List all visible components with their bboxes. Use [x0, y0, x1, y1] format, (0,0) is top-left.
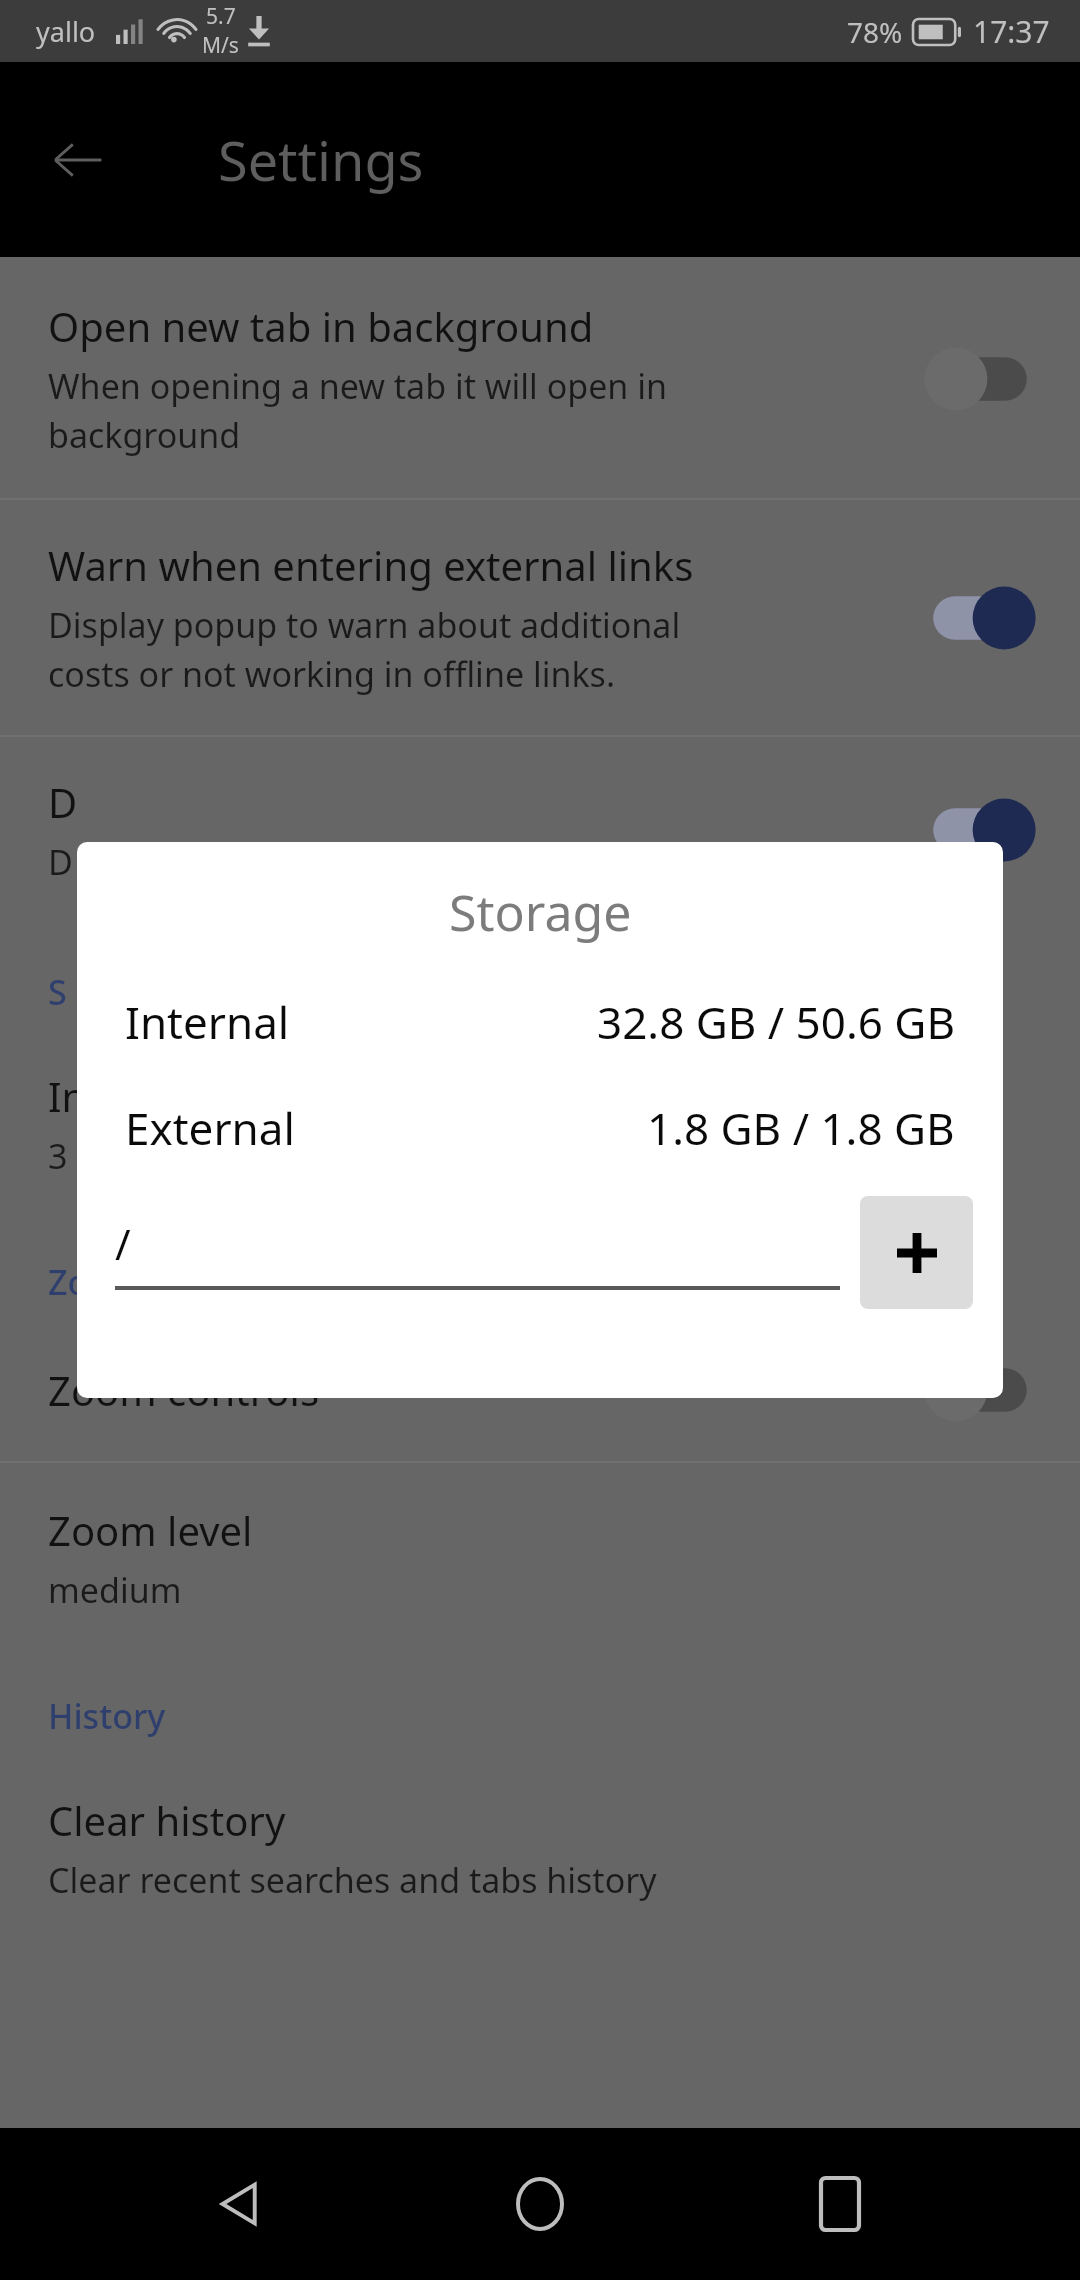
button[interactable]: Toggle off [920, 1355, 1040, 1425]
staticText: In [48, 1069, 87, 1123]
staticText: History [48, 1693, 166, 1739]
staticText: D [48, 839, 73, 885]
button[interactable]: Zoom controls [0, 1319, 1080, 1461]
button[interactable]: In [0, 1029, 1080, 1213]
staticText: Internal [125, 992, 290, 1052]
staticText: 17:37 [973, 11, 1050, 52]
staticText: M/s [202, 31, 239, 60]
staticText: Display popup to warn about additional c… [48, 602, 681, 697]
staticText: 32.8 GB / 50.6 GB [597, 992, 955, 1052]
staticText: 1.8 GB / 1.8 GB [647, 1098, 955, 1158]
staticText: 78% [847, 13, 903, 51]
button[interactable]: Zoom level [0, 1463, 1080, 1647]
staticText: When opening a new tab it will open in b… [48, 363, 668, 458]
button[interactable]: Toggle on [920, 795, 1040, 865]
button[interactable]: Back [30, 112, 126, 208]
staticText: Storage [449, 878, 632, 946]
staticText: External [125, 1098, 295, 1158]
staticText: / [115, 1215, 131, 1272]
button[interactable]: Add folder [860, 1196, 973, 1309]
button[interactable]: Toggle off [920, 344, 1040, 414]
staticText: 3 [48, 1133, 68, 1179]
button[interactable]: Clear history [0, 1753, 1080, 1937]
staticText: yallo [36, 13, 96, 50]
button[interactable]: Warn when entering external links [0, 500, 1080, 735]
staticText: Zoom level [48, 1503, 253, 1557]
staticText: Warn when entering external links [48, 538, 694, 592]
button[interactable]: Back [180, 2144, 300, 2264]
staticText: medium [48, 1567, 182, 1613]
staticText: Clear recent searches and tabs history [48, 1857, 657, 1903]
button[interactable]: Home [480, 2144, 600, 2264]
staticText: S [48, 969, 67, 1015]
staticText: Open new tab in background [48, 299, 594, 353]
button[interactable]: Open new tab in background [0, 257, 1080, 498]
button[interactable]: Toggle on [920, 583, 1040, 653]
button[interactable]: Recent apps [780, 2144, 900, 2264]
staticText: Settings [218, 123, 424, 197]
button[interactable]: / [115, 1215, 840, 1290]
staticText: Zoom [48, 1259, 142, 1305]
staticText: Clear history [48, 1793, 286, 1847]
button[interactable]: D [0, 737, 1080, 923]
staticText: 5.7 [206, 2, 236, 31]
staticText: D [48, 775, 78, 829]
staticText: Zoom controls [48, 1363, 320, 1417]
